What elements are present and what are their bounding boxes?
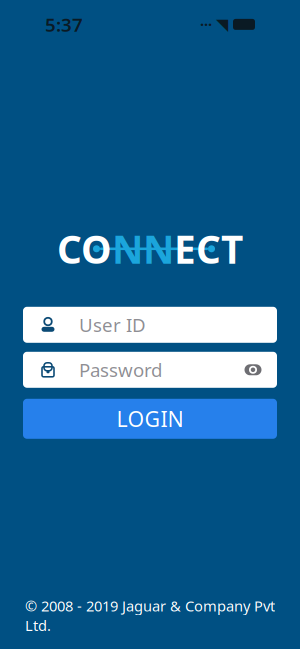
staticText: ECT xyxy=(174,223,243,274)
button[interactable]: LOGIN xyxy=(23,399,277,439)
staticText: 5:37 xyxy=(45,12,83,37)
staticText: User ID xyxy=(79,312,146,337)
staticText: CO xyxy=(57,223,112,274)
button[interactable]: Show password xyxy=(229,352,277,388)
staticText: © 2008 - 2019 Jaguar & Company Pvt Ltd. xyxy=(25,596,275,635)
staticText: NN xyxy=(112,223,174,274)
staticText: ◥ xyxy=(216,15,228,33)
staticText: Password xyxy=(79,357,162,382)
staticText: ··· xyxy=(200,15,212,34)
staticText: LOGIN xyxy=(116,405,183,433)
